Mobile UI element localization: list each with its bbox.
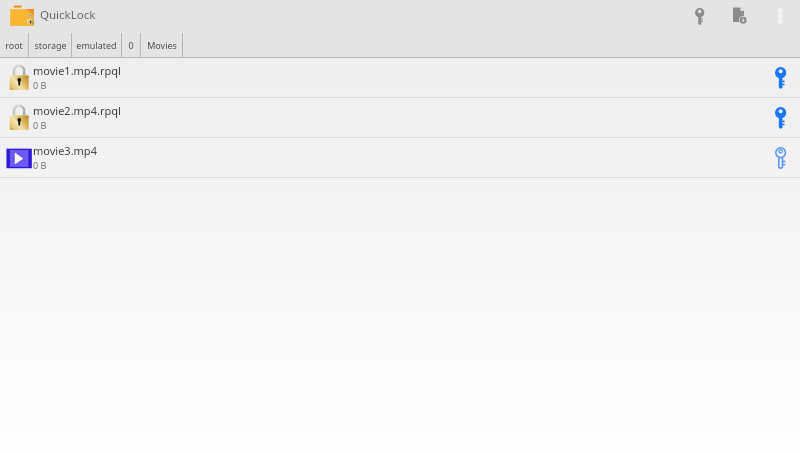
staticText: movie3.mp4 xyxy=(33,143,97,158)
button[interactable]: movie1.mp4.rpql xyxy=(0,58,800,97)
button[interactable]: storage xyxy=(29,30,71,57)
staticText: 0 B xyxy=(33,119,47,131)
button[interactable]: movie3.mp4 xyxy=(0,138,800,177)
button[interactable]: root xyxy=(0,30,28,57)
button[interactable]: More options xyxy=(765,0,795,30)
button[interactable]: emulated xyxy=(72,30,121,57)
button[interactable]: Key xyxy=(685,0,715,30)
staticText: root xyxy=(5,39,23,51)
staticText: QuickLock xyxy=(40,7,96,23)
staticText: 0 B xyxy=(33,159,47,171)
staticText: Movies xyxy=(147,39,177,51)
button[interactable]: Unlocked xyxy=(762,139,800,177)
staticText: movie1.mp4.rpql xyxy=(33,63,121,78)
staticText: emulated xyxy=(76,39,117,51)
button[interactable]: New file xyxy=(724,0,754,30)
button[interactable]: Locked xyxy=(762,59,800,97)
button[interactable]: Movies xyxy=(141,30,182,57)
staticText: storage xyxy=(34,39,67,51)
button[interactable]: 0 xyxy=(122,30,140,57)
button[interactable]: movie2.mp4.rpql xyxy=(0,98,800,137)
staticText: 0 xyxy=(128,39,134,51)
button[interactable]: QuickLock xyxy=(9,2,35,28)
staticText: 0 B xyxy=(33,79,47,91)
button[interactable]: Locked xyxy=(762,99,800,137)
staticText: movie2.mp4.rpql xyxy=(33,103,121,118)
